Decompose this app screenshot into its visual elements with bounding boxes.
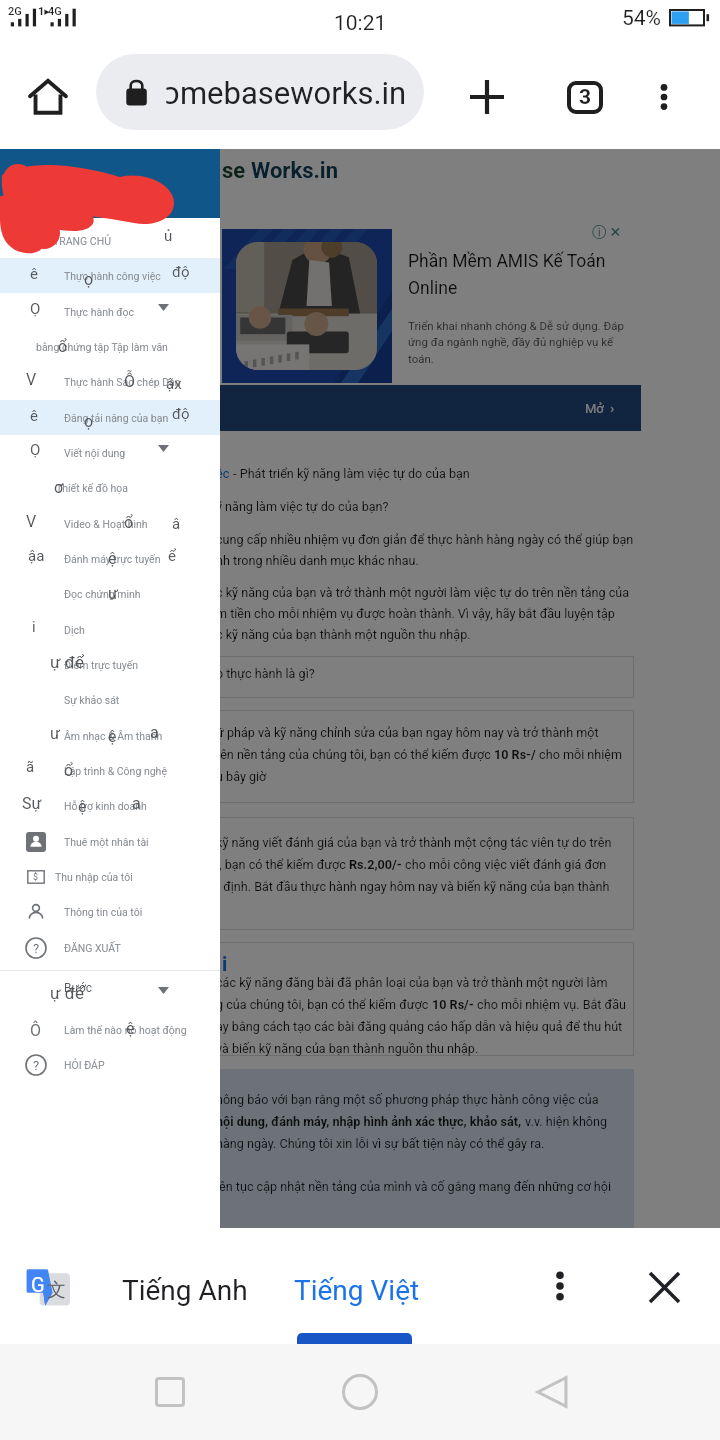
- staticText: a: [150, 723, 159, 742]
- button[interactable]: Thuê một nhân tài: [0, 824, 220, 859]
- staticText: ?: [33, 941, 40, 956]
- staticText: hông báo với bạn rằng một số phương pháp…: [216, 1092, 599, 1107]
- staticText: p thực hành là gì?: [216, 666, 315, 681]
- staticText: hàng ngày. Chúng tôi xin lỗi vì sự bất t…: [216, 1136, 545, 1151]
- staticText: 54%: [622, 6, 661, 31]
- button[interactable]: New tab: [451, 61, 523, 133]
- button[interactable]: Back: [513, 1344, 593, 1440]
- button[interactable]: Home: [320, 1344, 400, 1440]
- staticText: Hỗ trợ kinh doanh: [64, 800, 147, 812]
- button[interactable]: Tiếng Anh: [106, 1252, 264, 1328]
- staticText: ệ: [126, 1019, 135, 1038]
- button[interactable]: Video & Hoạt hình: [0, 506, 220, 541]
- button[interactable]: Sự khảo sát: [0, 682, 220, 717]
- staticText: ?: [33, 1058, 40, 1073]
- staticText: Bước: [64, 981, 93, 995]
- staticText: Ỗ: [124, 372, 136, 391]
- staticText: Thiết kế đồ họa: [56, 482, 128, 494]
- button[interactable]: ?: [0, 930, 220, 965]
- staticText: Lập trình & Công nghệ: [64, 765, 167, 777]
- staticText: ự để: [50, 983, 84, 1003]
- staticText: ệ: [108, 727, 117, 746]
- staticText: ổ: [64, 761, 74, 780]
- button[interactable]: Thực hành Sao chép Dán: [0, 364, 220, 399]
- staticText: g của chúng tôi, bạn có thể kiếm được: [216, 997, 432, 1012]
- button[interactable]: Đánh máy trực tuyến: [0, 541, 220, 576]
- button[interactable]: $: [0, 859, 220, 894]
- staticText: Thuê một nhân tài: [64, 836, 149, 848]
- button[interactable]: Switch tabs: [549, 61, 621, 133]
- button[interactable]: Dịch: [0, 612, 220, 647]
- staticText: ổ: [124, 513, 134, 532]
- button[interactable]: Thực hành công việc: [0, 258, 220, 293]
- button[interactable]: More options: [524, 1250, 596, 1322]
- button[interactable]: Tiếng Việt: [278, 1252, 436, 1328]
- button[interactable]: More options: [628, 61, 700, 133]
- button[interactable]: Thực hành đọc: [0, 294, 220, 329]
- staticText: ệ: [108, 549, 117, 568]
- staticText: Tiếng Việt: [294, 1274, 420, 1307]
- button[interactable]: Mở ›: [212, 385, 641, 431]
- staticText: 10 Rs-/: [494, 747, 536, 762]
- button[interactable]: TRANG CHỦ: [0, 223, 220, 258]
- button[interactable]: Recent apps: [130, 1344, 210, 1440]
- staticText: ê: [30, 407, 38, 425]
- staticText: cho mỗi nhiệm: [536, 747, 623, 762]
- staticText: ay bằng cách tạo các bài đăng quảng cáo …: [216, 1019, 623, 1034]
- staticText: Dịch: [64, 624, 85, 636]
- staticText: ệc: [216, 466, 230, 481]
- button[interactable]: Thông tin của tôi: [0, 894, 220, 929]
- staticText: iên tục cập nhật nền tảng của mình và cố…: [216, 1179, 611, 1194]
- staticText: Sự: [22, 794, 42, 813]
- staticText: t định. Bắt đầu thực hành ngay hôm nay v…: [216, 879, 610, 894]
- staticText: Mở ›: [585, 401, 615, 416]
- staticText: Đọc chứng minh: [64, 588, 141, 600]
- staticText: ɔmebaseworks.in: [165, 71, 407, 113]
- staticText: cung cấp nhiều nhiệm vụ đơn giản để thực…: [216, 532, 634, 547]
- button[interactable]: bằng chứng tập Tập làm văn: [0, 329, 220, 364]
- staticText: Thực hành công việc: [64, 270, 161, 282]
- staticText: ự để: [50, 652, 84, 672]
- staticText: V: [26, 512, 37, 531]
- staticText: ê: [30, 265, 38, 283]
- button[interactable]: Thiết kế đồ họa: [0, 470, 220, 505]
- staticText: i: [32, 618, 36, 636]
- staticText: kỹ năng viết đánh giá của bạn và trở thà…: [216, 835, 612, 850]
- button[interactable]: [0, 977, 220, 1012]
- staticText: độ: [172, 263, 190, 281]
- staticText: Ọ: [30, 441, 41, 459]
- button[interactable]: Âm nhạc & Âm thanh: [0, 718, 220, 753]
- staticText: HỎI ĐÁP: [64, 1059, 105, 1071]
- button[interactable]: Ô: [0, 1012, 220, 1047]
- staticText: ã: [26, 758, 35, 776]
- button[interactable]: Close: [628, 1251, 700, 1323]
- button[interactable]: ɔmebaseworks.in: [96, 54, 424, 130]
- button[interactable]: Home: [12, 61, 84, 133]
- staticText: ơ: [54, 478, 64, 497]
- staticText: ư: [50, 724, 60, 743]
- button[interactable]: Viết nội dung: [0, 435, 220, 470]
- button[interactable]: Đăng tải năng của bạn: [0, 400, 220, 435]
- staticText: Video & Hoạt hình: [64, 518, 148, 530]
- staticText: và biến kỹ năng của bạn thành nguồn thu …: [216, 1041, 479, 1056]
- staticText: TRANG CHỦ: [53, 235, 111, 247]
- staticText: ọ: [84, 270, 94, 289]
- button[interactable]: Đọc chứng minh: [0, 576, 220, 611]
- staticText: ậx: [166, 375, 182, 393]
- button[interactable]: Lập trình & Công nghệ: [0, 753, 220, 788]
- staticText: ủ: [164, 227, 173, 245]
- button[interactable]: ?: [0, 1047, 220, 1082]
- staticText: G: [31, 1273, 45, 1296]
- staticText: v.v. hiện không: [522, 1114, 608, 1129]
- staticText: ệ: [78, 797, 87, 816]
- button[interactable]: Điểm trực tuyến: [0, 647, 220, 682]
- staticText: Ọ: [30, 300, 41, 318]
- staticText: u bây giờ: [216, 769, 267, 784]
- staticText: ổ: [58, 337, 68, 356]
- staticText: c kỹ năng của bạn thành một nguồn thu nh…: [216, 627, 471, 642]
- staticText: Thu nhập của tôi: [55, 871, 133, 883]
- button[interactable]: Hỗ trợ kinh doanh: [0, 788, 220, 823]
- staticText: ư: [108, 584, 118, 603]
- staticText: Làm thế nào nó hoạt động: [64, 1024, 187, 1036]
- staticText: nội dung, đánh máy, nhập hình ảnh xác th…: [216, 1114, 522, 1129]
